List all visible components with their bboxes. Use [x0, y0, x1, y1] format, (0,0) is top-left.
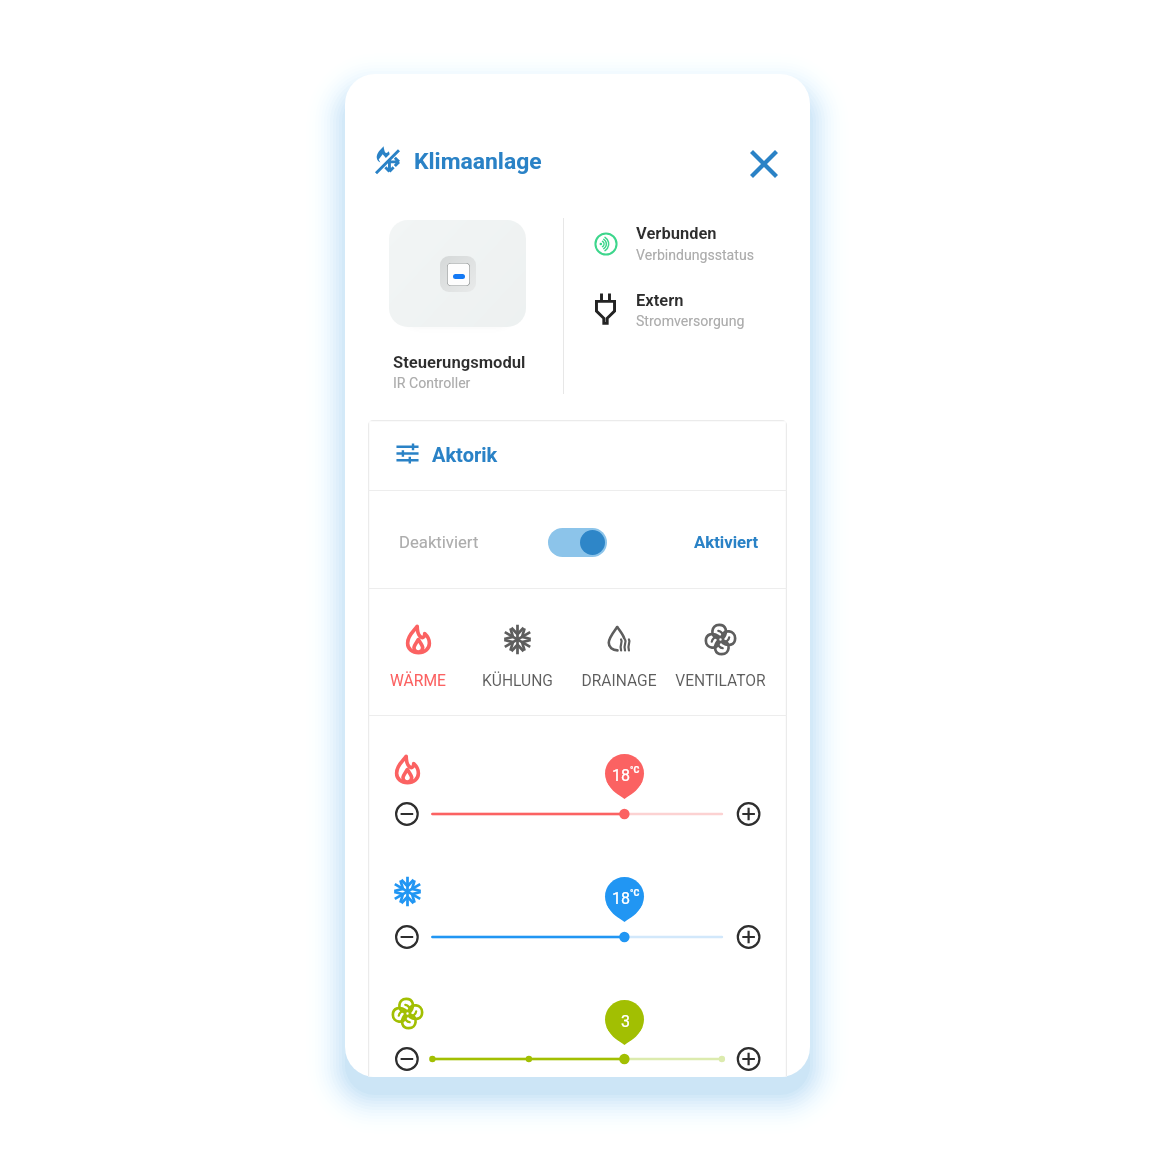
button[interactable]: Close [745, 145, 783, 183]
staticText: 3 [621, 1012, 630, 1031]
staticText: °C [630, 888, 640, 899]
button[interactable]: DRAINAGE [567, 610, 671, 706]
staticText: 18 [612, 889, 630, 908]
staticText: WÄRME [390, 672, 446, 690]
staticText: Aktiviert [694, 533, 759, 553]
button[interactable]: Adjust value [368, 917, 787, 957]
staticText: Steuerungsmodul [393, 353, 526, 372]
button[interactable]: Actuator enabled [548, 528, 607, 557]
button[interactable]: WÄRME [368, 610, 470, 706]
button[interactable]: Adjust value [368, 794, 787, 834]
staticText: VENTILATOR [675, 672, 766, 690]
staticText: IR Controller [393, 375, 471, 392]
staticText: 18 [612, 766, 630, 785]
staticText: DRAINAGE [581, 672, 657, 690]
staticText: °C [630, 765, 640, 776]
staticText: Verbunden [636, 224, 717, 243]
staticText: Extern [636, 291, 684, 310]
button[interactable]: KÜHLUNG [465, 610, 569, 706]
button[interactable]: Adjust value [368, 1039, 787, 1077]
staticText: Stromversorgung [636, 313, 745, 330]
staticText: Aktorik [432, 443, 498, 466]
staticText: KÜHLUNG [482, 672, 553, 690]
staticText: Verbindungsstatus [636, 247, 754, 264]
staticText: Klimaanlage [414, 148, 542, 175]
staticText: Deaktiviert [399, 533, 479, 553]
button[interactable]: VENTILATOR [668, 610, 772, 706]
